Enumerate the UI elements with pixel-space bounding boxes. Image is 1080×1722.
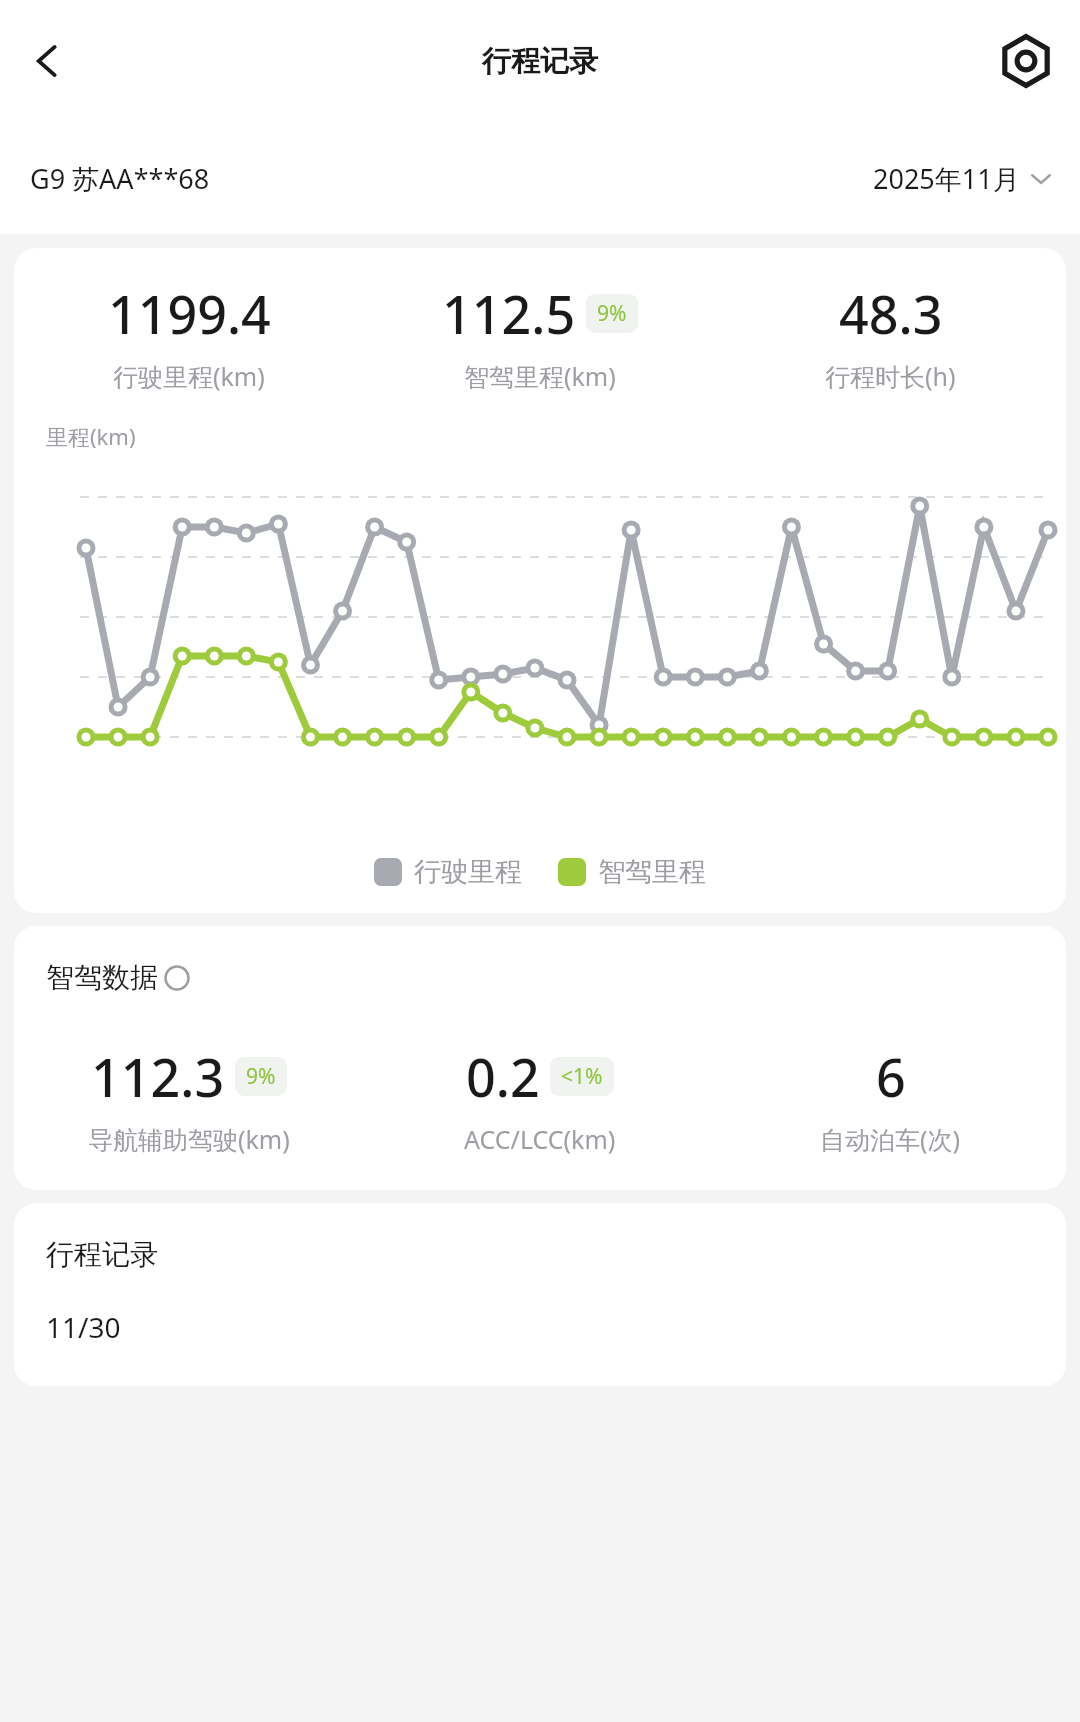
staticText: 行程记录 <box>46 1237 158 1272</box>
staticText: ACC/LCC(km) <box>464 1122 616 1156</box>
staticText: 行程时长(h) <box>825 359 956 393</box>
staticText: 6 <box>876 1041 906 1112</box>
staticText: 112.3 <box>91 1041 225 1112</box>
staticText: 智驾里程 <box>598 855 706 889</box>
staticText: 9% <box>597 299 627 328</box>
staticText: G9 苏AA***68 <box>30 160 210 197</box>
staticText: 9% <box>246 1062 276 1091</box>
button[interactable]: Settings <box>988 23 1064 99</box>
staticText: 行驶里程(km) <box>113 359 265 393</box>
staticText: 0.2 <box>466 1041 540 1112</box>
staticText: 2025年11月 <box>873 160 1020 197</box>
staticText: 48.3 <box>839 278 943 349</box>
staticText: 行驶里程 <box>414 855 522 889</box>
staticText: 112.5 <box>442 278 576 349</box>
staticText: 里程(km) <box>46 421 136 451</box>
staticText: 自动泊车(次) <box>820 1122 961 1156</box>
staticText: 导航辅助驾驶(km) <box>88 1122 290 1156</box>
button[interactable]: 2025年11月 <box>873 160 1052 197</box>
button[interactable]: Back <box>12 26 82 96</box>
staticText: 智驾里程(km) <box>464 359 616 393</box>
staticText: 1199.4 <box>108 278 271 349</box>
staticText: 智驾数据 <box>46 960 158 995</box>
staticText: 行程记录 <box>482 43 598 80</box>
other: Help <box>164 965 190 991</box>
staticText: <1% <box>561 1062 603 1091</box>
staticText: 11/30 <box>46 1308 121 1346</box>
